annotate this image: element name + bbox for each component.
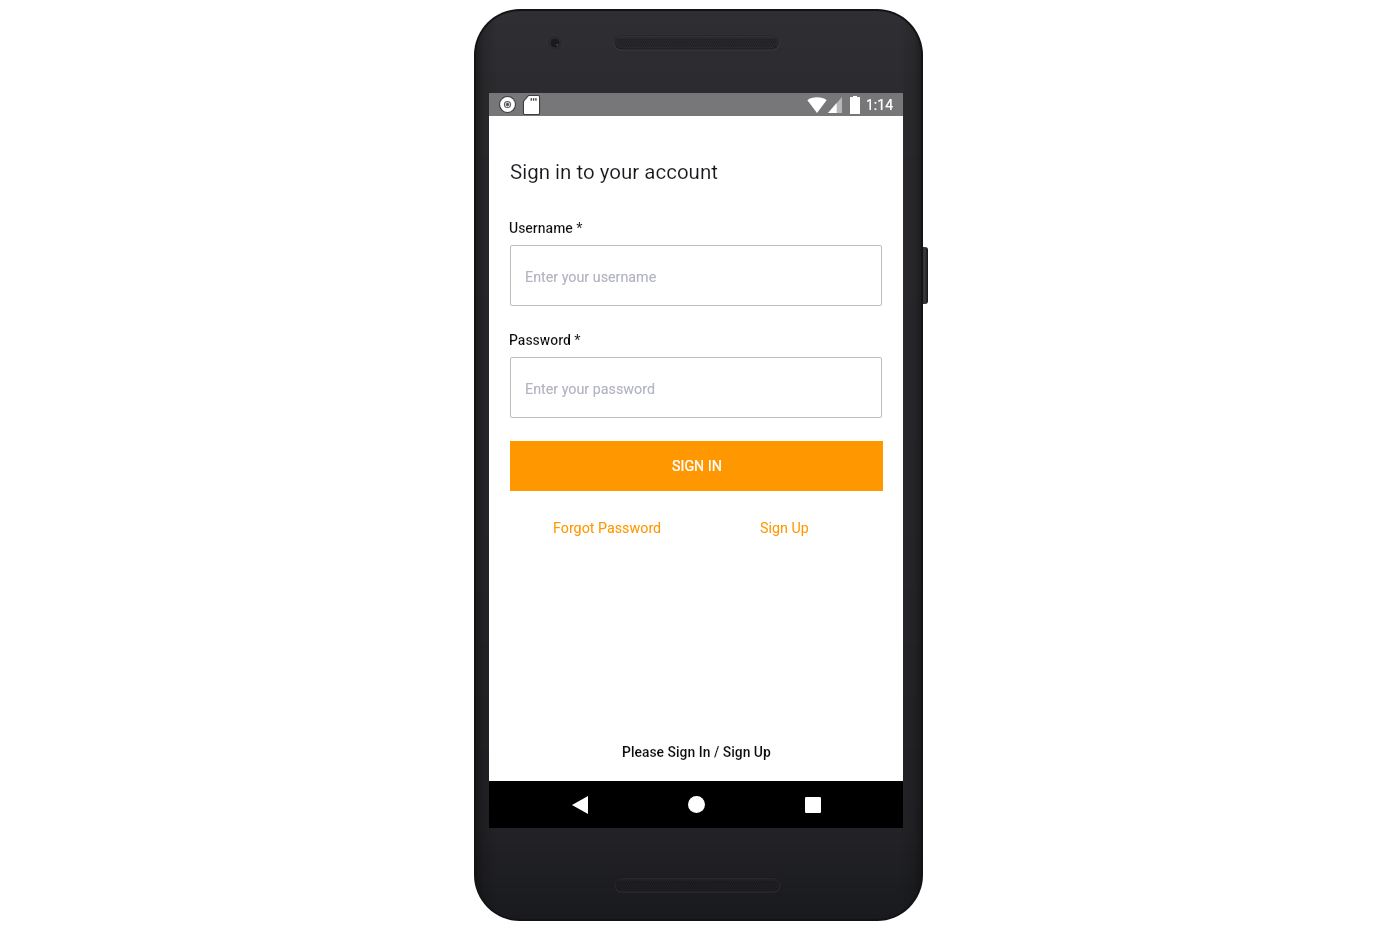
button[interactable]: Home	[674, 781, 718, 828]
staticText: Sign Up	[760, 520, 809, 537]
button[interactable]: SIGN IN	[510, 441, 883, 491]
button[interactable]: Enter your username	[510, 245, 882, 306]
staticText: Enter your username	[525, 269, 657, 286]
staticText: Password *	[509, 332, 581, 348]
button[interactable]: Recent apps	[791, 781, 835, 828]
staticText: Enter your password	[525, 381, 655, 398]
button[interactable]: Forgot Password	[543, 514, 672, 543]
staticText: Please Sign In / Sign Up	[622, 744, 771, 760]
button[interactable]: Back	[558, 781, 602, 828]
staticText: Sign in to your account	[510, 160, 718, 184]
staticText: SIGN IN	[672, 458, 722, 475]
button[interactable]: Enter your password	[510, 357, 882, 418]
staticText: Forgot Password	[553, 520, 662, 537]
staticText: 1:14	[866, 97, 893, 113]
button[interactable]: Sign Up	[750, 514, 819, 543]
staticText: Username *	[509, 220, 583, 236]
